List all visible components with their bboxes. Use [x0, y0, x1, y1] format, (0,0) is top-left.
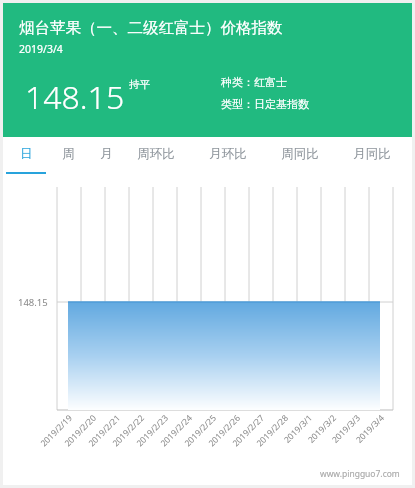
staticText: 月环比 — [209, 146, 247, 162]
button[interactable]: 月 — [87, 137, 125, 179]
staticText: 2019/3/4 — [19, 42, 63, 56]
button[interactable]: 周 — [49, 137, 87, 179]
staticText: 日 — [20, 146, 33, 162]
staticText: 月 — [100, 146, 113, 162]
staticText: 持平 — [129, 78, 150, 91]
staticText: 种类：红富士 — [221, 75, 287, 89]
button[interactable]: 周环比 — [127, 137, 185, 179]
staticText: 148.15 — [25, 75, 125, 119]
staticText: 类型：日定基指数 — [221, 97, 309, 111]
button[interactable]: 日 — [6, 137, 46, 179]
staticText: 月同比 — [353, 146, 391, 162]
button[interactable]: 月环比 — [199, 137, 257, 179]
button[interactable]: 月同比 — [343, 137, 401, 179]
staticText: 周环比 — [137, 146, 175, 162]
staticText: 烟台苹果（一、二级红富士）价格指数 — [19, 18, 283, 38]
staticText: 周同比 — [281, 146, 319, 162]
button[interactable]: 周同比 — [271, 137, 329, 179]
staticText: 周 — [62, 146, 75, 162]
